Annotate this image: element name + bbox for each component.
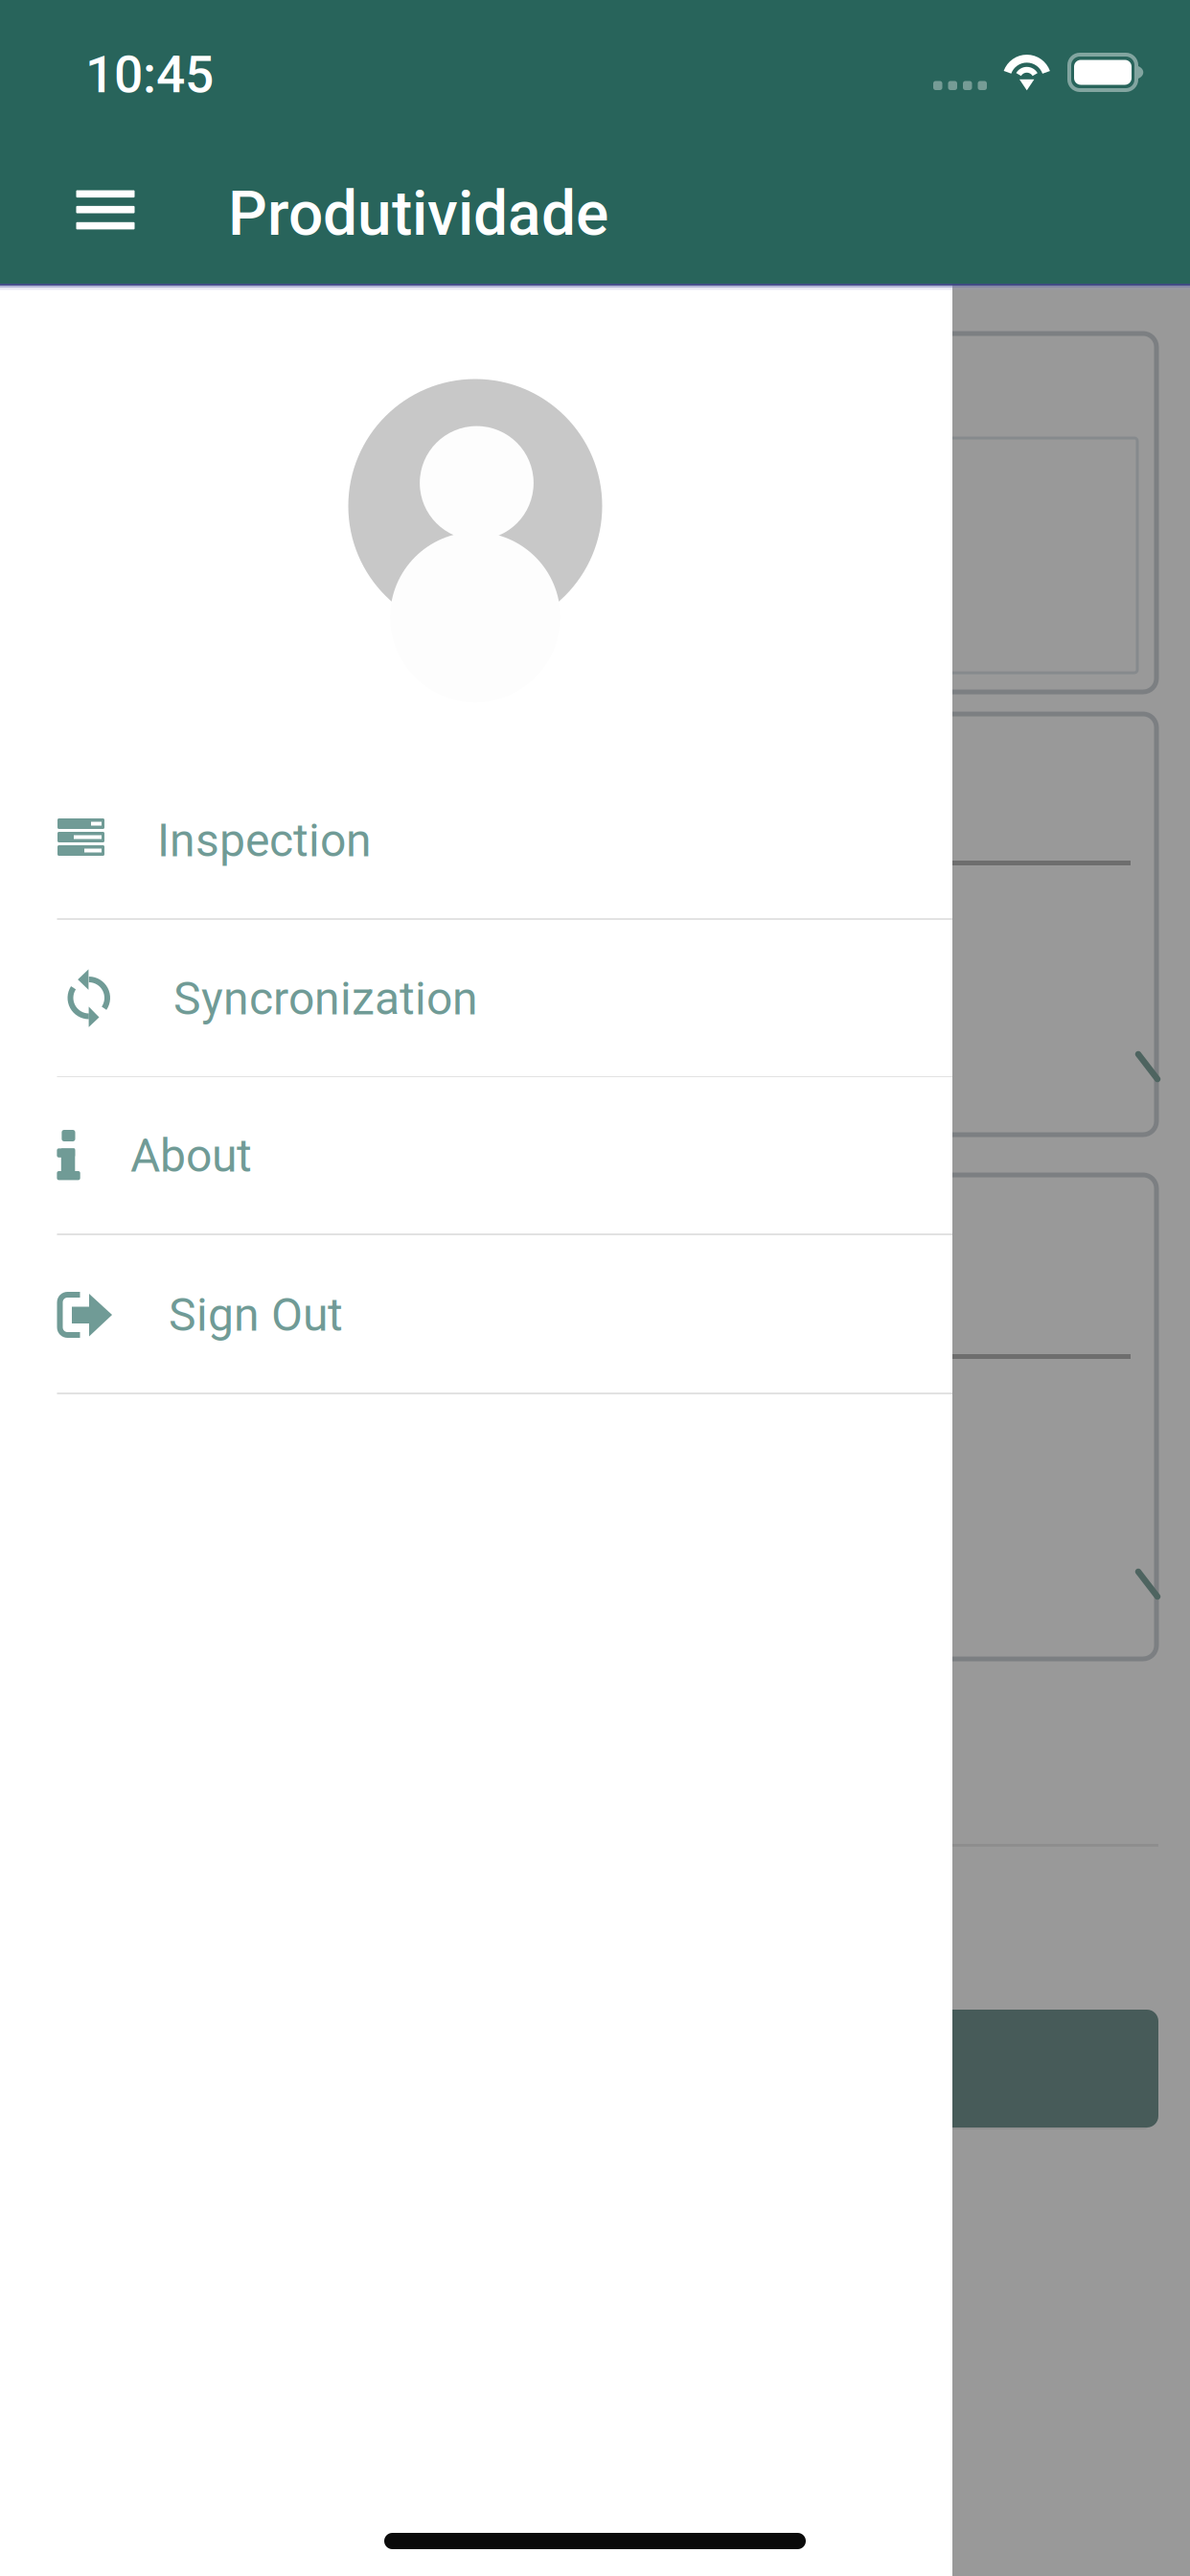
staticText: Inspection (157, 814, 372, 867)
staticText: Syncronization (173, 972, 478, 1026)
button[interactable]: About (0, 1077, 952, 1235)
staticText: About (130, 1129, 252, 1183)
staticText: 10:45 (85, 45, 214, 105)
button[interactable]: Syncronization (0, 920, 952, 1078)
button[interactable]: Inspection (0, 762, 952, 920)
staticText: Sign Out (169, 1288, 343, 1342)
staticText: Produtividade (228, 178, 608, 250)
button[interactable]: Open navigation menu (48, 176, 163, 243)
button[interactable]: Sign Out (0, 1236, 952, 1394)
